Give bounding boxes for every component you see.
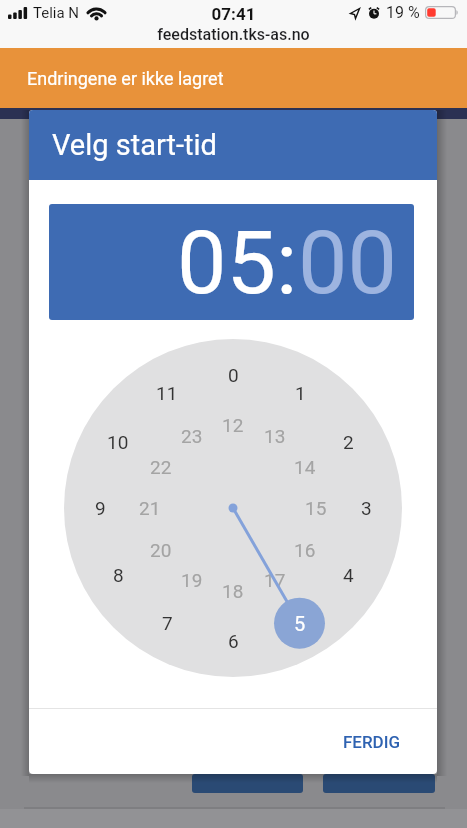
staticText: 21 [139,497,161,519]
staticText: 15 [305,497,327,519]
button[interactable] [192,774,303,793]
staticText: 13 [264,425,286,447]
staticText: Endringene er ikke lagret [27,68,224,89]
staticText: 4 [343,564,354,586]
staticText: 20 [150,539,172,561]
staticText: 17 [264,569,286,591]
staticText: 12 [222,414,244,436]
staticText: 1 [295,382,306,404]
button[interactable] [323,774,435,793]
staticText: 2 [343,431,354,453]
staticText: 14 [294,456,316,478]
staticText: 5 [294,612,306,635]
staticText: 8 [113,564,124,586]
button[interactable]: FERDIG [324,724,420,760]
staticText: 23 [181,425,203,447]
staticText: Telia N [33,4,80,22]
staticText: 07:41 [0,4,467,24]
staticText: 19 % [386,3,420,22]
staticText: 11 [156,382,178,404]
staticText: 05: [177,211,298,314]
button[interactable]: 05: [49,204,414,320]
staticText: 16 [294,539,316,561]
staticText: Velg start-tid [52,128,217,162]
staticText: 6 [228,630,239,652]
staticText: 7 [162,612,173,634]
button[interactable]: 5 [274,598,325,649]
staticText: 00 [298,211,397,314]
staticText: FERDIG [343,732,401,752]
staticText: 3 [361,497,372,519]
staticText: 18 [222,580,244,602]
staticText: 0 [228,364,239,386]
staticText: 19 [181,569,203,591]
staticText: 10 [107,431,129,453]
staticText: 9 [95,497,106,519]
staticText: feedstation.tks-as.no [0,25,467,44]
button[interactable]: Endringene er ikke lagret [0,48,467,108]
staticText: 22 [150,456,172,478]
